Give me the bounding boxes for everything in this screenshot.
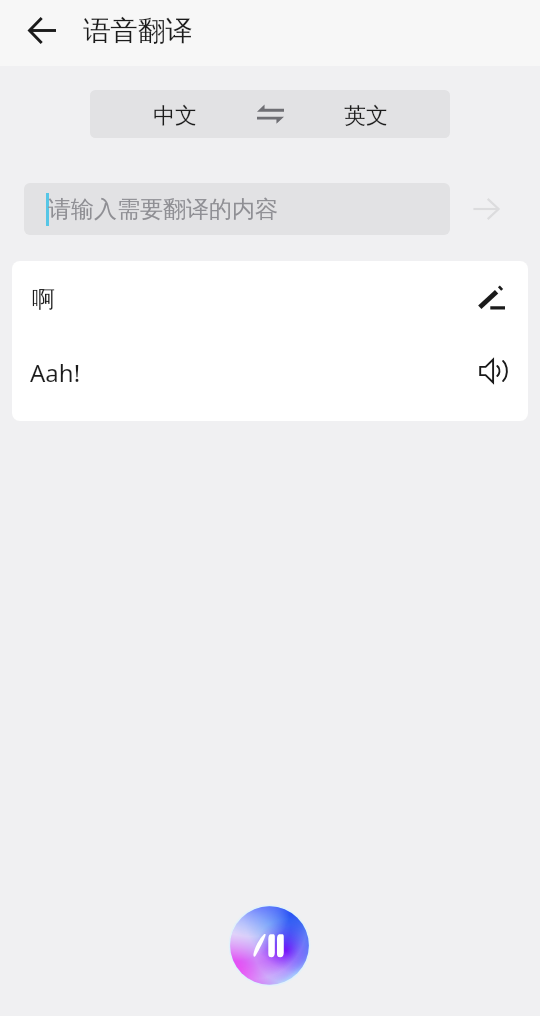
button[interactable]: Play translation <box>466 351 522 391</box>
button[interactable]: Translate <box>456 183 516 235</box>
button[interactable]: Voice input <box>228 904 311 987</box>
staticText: 语音翻译 <box>83 14 193 49</box>
button[interactable]: Back <box>15 10 70 50</box>
staticText: Aah! <box>30 356 81 389</box>
button[interactable]: Aah! <box>12 337 528 421</box>
button[interactable]: 请输入需要翻译的内容 <box>24 183 450 235</box>
button[interactable]: 啊 <box>12 261 528 337</box>
staticText: 请输入需要翻译的内容 <box>48 195 278 224</box>
staticText: 中文 <box>153 102 197 130</box>
staticText: 啊 <box>32 285 55 314</box>
button[interactable]: Swap languages <box>242 90 298 138</box>
button[interactable]: 英文 <box>298 90 450 138</box>
button[interactable]: 中文 <box>90 90 242 138</box>
button[interactable]: Edit <box>463 278 519 318</box>
staticText: 英文 <box>344 102 388 130</box>
